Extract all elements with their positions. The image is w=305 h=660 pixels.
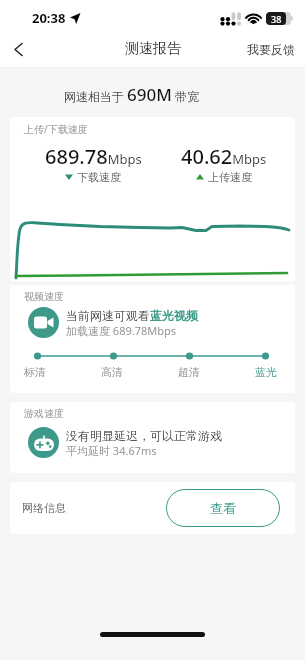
staticText: 20:38 [32, 9, 66, 27]
staticText: 下载速度 [77, 170, 121, 184]
staticText: 查看 [210, 500, 236, 516]
staticText: 40.62Mbps [181, 143, 267, 170]
staticText: 测速报告 [125, 40, 181, 58]
staticText: 上传/下载速度 [24, 122, 88, 136]
button[interactable]: 查看 [166, 489, 280, 527]
staticText: 网速相当于 690M 带宽 [64, 83, 200, 106]
button[interactable] [6, 37, 30, 61]
staticText: 游戏速度 [24, 407, 64, 420]
staticText: 视频速度 [24, 290, 64, 303]
staticText: 加载速度 689.78Mbps [66, 323, 177, 338]
staticText: 高清 [101, 365, 123, 379]
staticText: 689.78Mbps [45, 143, 142, 170]
staticText: 平均延时 34.67ms [66, 443, 157, 458]
staticText: 标清 [24, 365, 46, 379]
staticText: 38 [271, 13, 282, 25]
staticText: 没有明显延迟，可以正常游戏 [66, 428, 222, 443]
staticText: 当前网速可观看蓝光视频 [66, 308, 198, 323]
staticText: 上传速度 [208, 170, 252, 184]
staticText: 蓝光 [255, 365, 277, 379]
staticText: 网络信息 [22, 501, 66, 515]
staticText: 超清 [178, 365, 200, 379]
staticText: 我要反馈 [247, 42, 295, 57]
button[interactable]: 我要反馈 [247, 42, 295, 57]
